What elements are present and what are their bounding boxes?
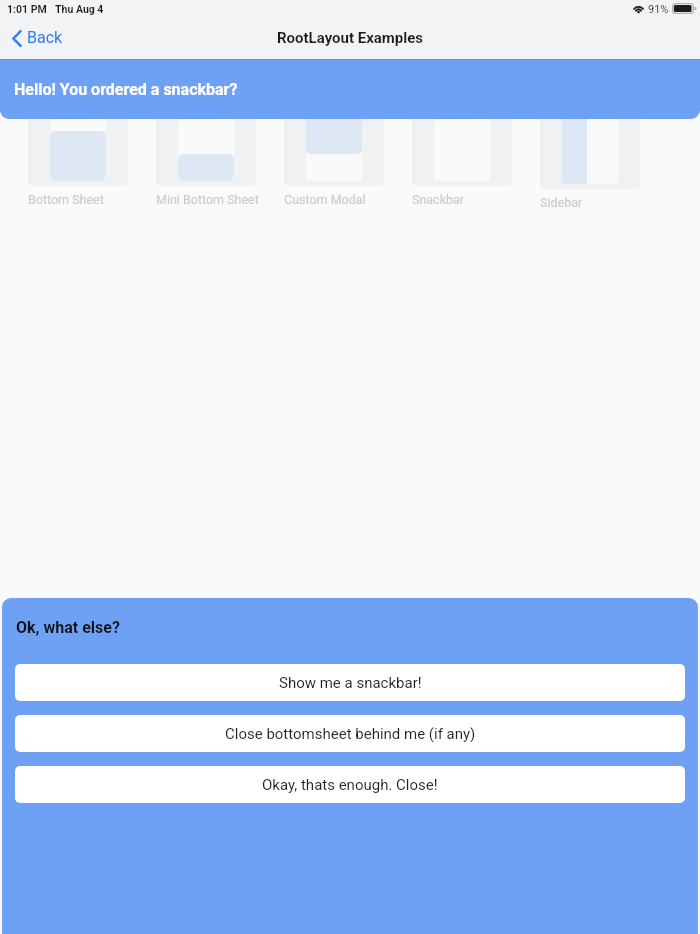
staticText: Custom Modal: [284, 192, 366, 207]
staticText: Snackbar: [412, 192, 465, 207]
button[interactable]: Okay, thats enough. Close!: [15, 766, 685, 803]
staticText: Sidebar: [540, 195, 583, 210]
button[interactable]: Close bottomsheet behind me (if any): [15, 715, 685, 752]
staticText: Bottom Sheet: [28, 192, 104, 207]
button[interactable]: Bottom Sheet: [28, 67, 128, 207]
staticText: RootLayout Examples: [277, 29, 424, 47]
button[interactable]: Hello! You ordered a snackbar?: [0, 59, 700, 119]
button[interactable]: Sidebar: [540, 70, 640, 210]
staticText: Mini Bottom Sheet: [156, 192, 259, 207]
staticText: Ok, what else?: [16, 618, 120, 637]
button[interactable]: Snackbar: [412, 67, 512, 207]
staticText: Close bottomsheet behind me (if any): [225, 725, 476, 743]
staticText: Okay, thats enough. Close!: [262, 776, 438, 794]
staticText: 91%: [648, 3, 669, 16]
staticText: 1:01 PM: [7, 3, 47, 15]
staticText: Back: [27, 28, 63, 47]
staticText: Show me a snackbar!: [279, 674, 422, 692]
button[interactable]: Back: [12, 29, 63, 48]
button[interactable]: Show me a snackbar!: [15, 664, 685, 701]
staticText: Hello! You ordered a snackbar?: [14, 80, 238, 99]
staticText: Thu Aug 4: [55, 3, 104, 15]
button[interactable]: Custom Modal: [284, 67, 384, 207]
button[interactable]: Mini Bottom Sheet: [156, 67, 256, 207]
